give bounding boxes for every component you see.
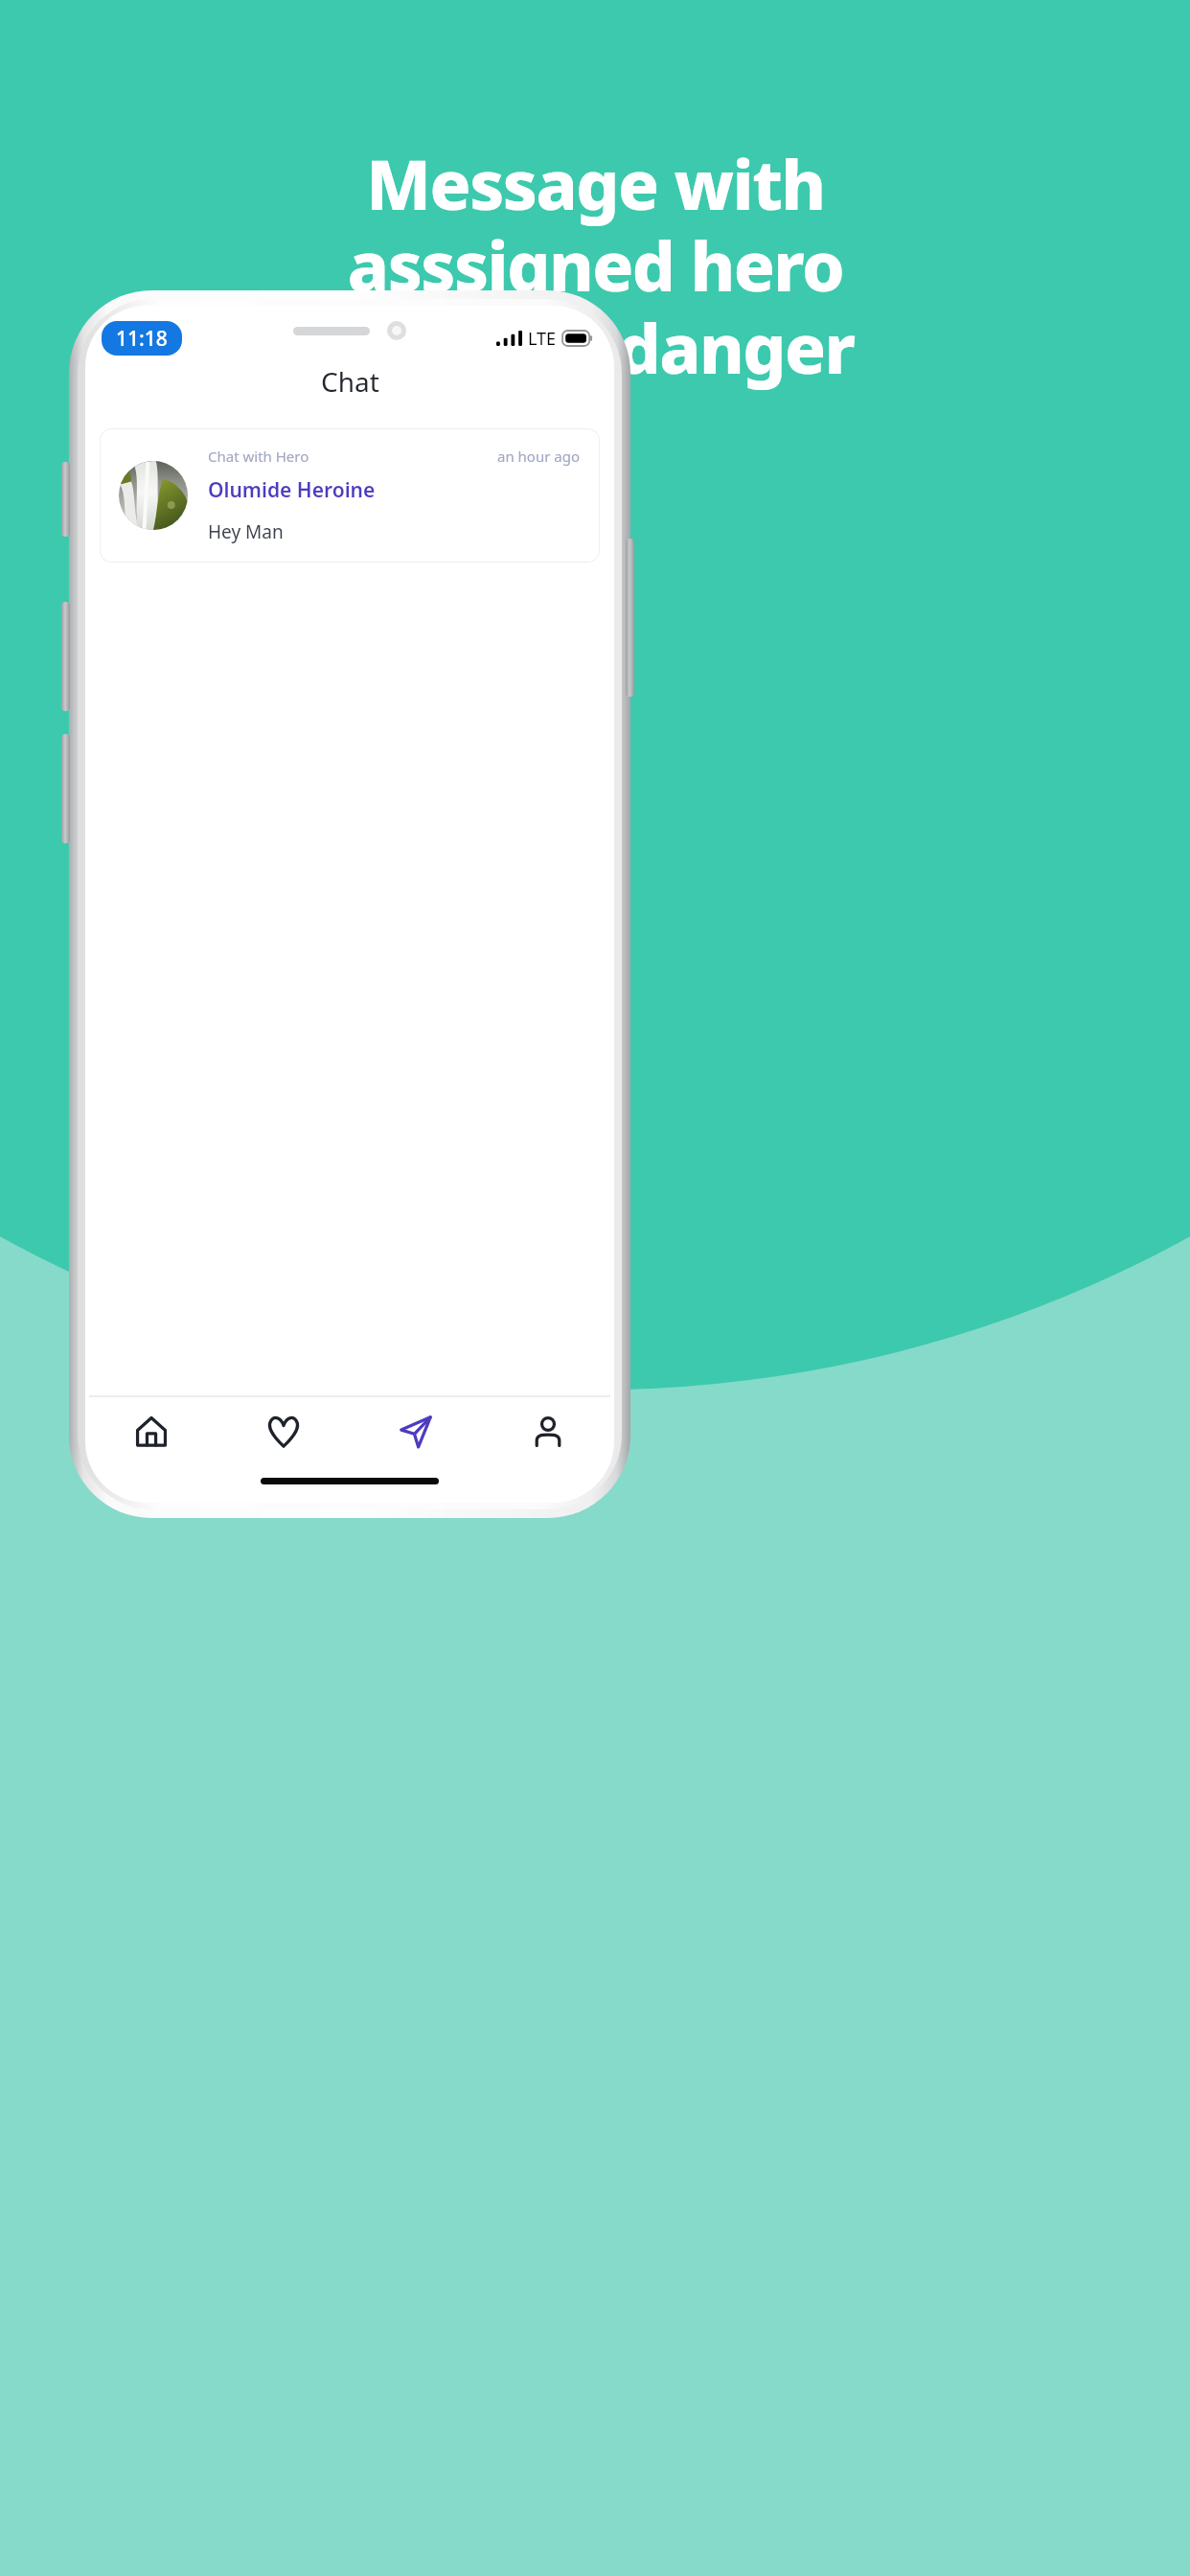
button[interactable]: Chat with Hero [100, 428, 600, 563]
staticText: Message with asssigned hero when in dang… [336, 137, 855, 394]
button[interactable]: Home [85, 1397, 217, 1466]
staticText: Chat with Hero [208, 447, 309, 466]
staticText: an hour ago [497, 447, 581, 466]
staticText: LTE [528, 327, 557, 351]
button[interactable]: Profile [482, 1397, 614, 1466]
staticText: Chat [321, 363, 379, 400]
staticText: Hey Man [208, 519, 284, 544]
button[interactable]: Favorites [217, 1397, 350, 1466]
staticText: 11:18 [116, 325, 168, 352]
button[interactable]: Messages [350, 1397, 482, 1466]
staticText: Olumide Heroine [208, 476, 376, 504]
